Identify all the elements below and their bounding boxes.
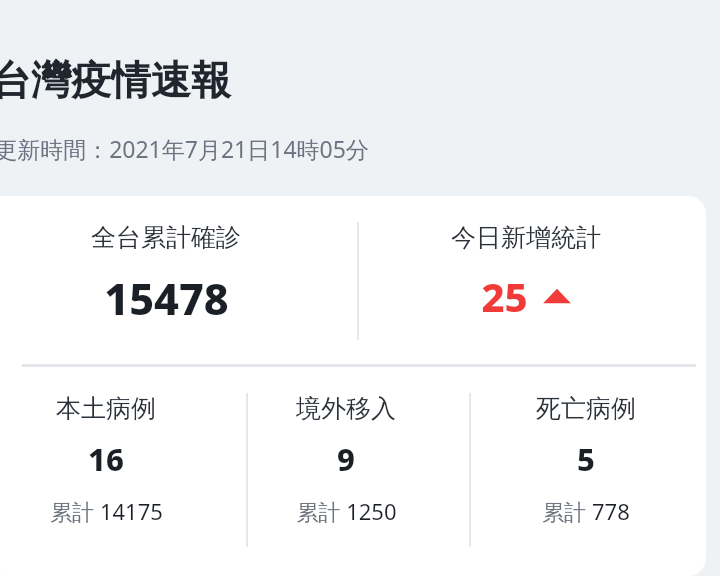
- staticText: 死亡病例: [536, 393, 636, 424]
- button[interactable]: 境外移入: [226, 367, 466, 567]
- staticText: 累計 14175: [50, 496, 163, 526]
- button[interactable]: 今日新增統計: [346, 196, 706, 366]
- staticText: 今日新增統計: [451, 222, 601, 253]
- staticText: 9: [337, 438, 355, 480]
- staticText: 15478: [104, 269, 229, 328]
- other: Increase: [542, 283, 572, 309]
- staticText: 累計 1250: [296, 496, 397, 526]
- button[interactable]: 死亡病例: [466, 367, 706, 567]
- staticText: 全台累計確診: [91, 222, 241, 253]
- staticText: 累計 778: [542, 496, 630, 526]
- staticText: 16: [88, 438, 124, 480]
- staticText: 本土病例: [56, 393, 156, 424]
- staticText: 境外移入: [296, 393, 396, 424]
- staticText: 台灣疫情速報: [0, 55, 231, 105]
- button[interactable]: 本土病例: [0, 367, 226, 567]
- staticText: 5: [577, 438, 595, 480]
- button[interactable]: 全台累計確診: [0, 196, 346, 366]
- staticText: 25: [481, 269, 528, 323]
- staticText: 更新時間：2021年7月21日14時05分: [0, 133, 369, 164]
